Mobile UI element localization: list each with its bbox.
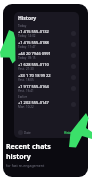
- other: Call back: [71, 86, 76, 91]
- staticText: Yest. 16:41: [18, 89, 34, 93]
- staticText: +1 917 555-0164: [18, 84, 49, 89]
- other: Call back: [71, 64, 76, 69]
- staticText: Yest. 18:05: [18, 78, 34, 82]
- staticText: +1 202 555-0147: [18, 100, 49, 105]
- button[interactable]: History: [64, 131, 75, 135]
- button[interactable]: +1 415 555-0132: [18, 28, 76, 39]
- staticText: History: [18, 15, 37, 22]
- staticText: for fast re-engagement: [6, 163, 45, 168]
- button[interactable]: +1 628 555-0110: [18, 61, 76, 72]
- staticText: +44 20 7946 0991: [18, 51, 51, 56]
- staticText: +1 628 555-0110: [18, 62, 49, 67]
- staticText: Today: [18, 24, 27, 28]
- staticText: Today 11:47: [18, 45, 36, 49]
- button[interactable]: +1 202 555-0147: [18, 99, 76, 110]
- staticText: +1 415 555-0132: [18, 29, 49, 34]
- button[interactable]: +33 1 70 18 99 22: [18, 72, 76, 83]
- other: Call back: [71, 31, 76, 36]
- staticText: Earlier: [18, 95, 28, 99]
- other: Call back: [71, 42, 76, 47]
- button[interactable]: +1 917 555-0164: [18, 83, 76, 94]
- staticText: Today 14:02: [18, 34, 36, 38]
- staticText: Mon 10:22: [18, 105, 34, 109]
- other: Call back: [71, 75, 76, 80]
- staticText: Date: [24, 131, 31, 135]
- staticText: Recent chats: [6, 142, 51, 152]
- button[interactable]: +1 415 555-0188: [18, 39, 76, 50]
- button[interactable]: Date: [18, 130, 31, 135]
- other: Call back: [71, 102, 76, 107]
- staticText: Yest. 21:30: [18, 67, 34, 71]
- button[interactable]: +44 20 7946 0991: [18, 50, 76, 61]
- other: Call back: [71, 53, 76, 58]
- staticText: Today 09:15: [18, 56, 36, 60]
- staticText: history: [6, 152, 31, 162]
- staticText: +1 415 555-0188: [18, 40, 49, 45]
- staticText: +33 1 70 18 99 22: [18, 73, 51, 78]
